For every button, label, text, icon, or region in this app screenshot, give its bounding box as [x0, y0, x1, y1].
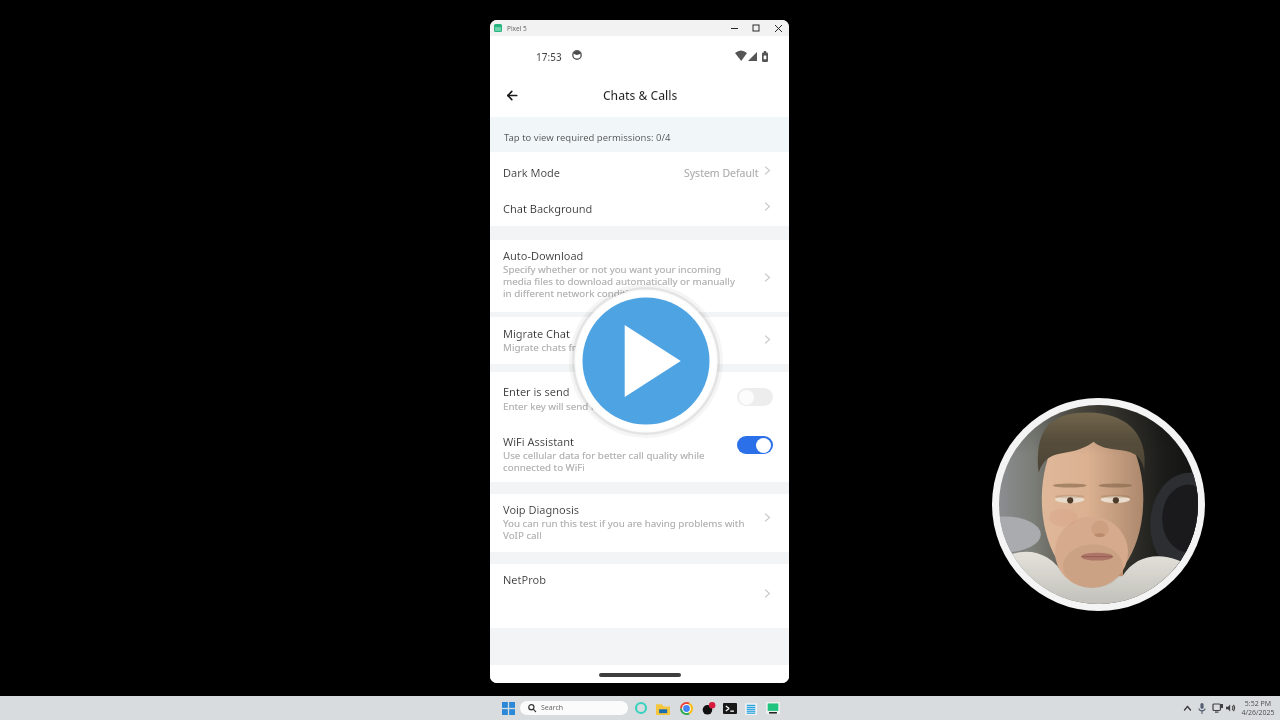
staticText: 5:52 PM 4/26/2025	[1241, 699, 1275, 717]
button[interactable]: Turn on	[737, 388, 773, 406]
button[interactable]: Auto-Download	[490, 244, 789, 313]
button[interactable]: Notes	[740, 696, 762, 720]
button[interactable]: Tap to view required permissions: 0/4	[490, 117, 789, 152]
staticText: Enter key will send message	[503, 400, 633, 413]
staticText: Enter is send	[503, 384, 570, 399]
button[interactable]: Network	[1207, 696, 1229, 720]
button[interactable]: Back	[498, 81, 526, 109]
button[interactable]: Show hidden icons	[1176, 696, 1198, 720]
button[interactable]: Task View	[630, 696, 652, 720]
button[interactable]: 5:52 PM 4/26/2025	[1240, 696, 1276, 720]
staticText: Tap to view required permissions: 0/4	[504, 131, 671, 144]
button[interactable]: Android Emulator	[762, 696, 784, 720]
staticText: Auto-Download	[503, 248, 584, 263]
staticText: System Default	[684, 166, 759, 180]
button[interactable]: Close	[767, 20, 789, 36]
button[interactable]: Dark Mode	[490, 152, 789, 189]
button[interactable]: Music	[697, 696, 719, 720]
staticText: WiFi Assistant	[503, 434, 575, 449]
staticText: Pixel 5	[507, 24, 527, 33]
button[interactable]: Minimize	[723, 20, 745, 36]
button[interactable]: Terminal	[719, 696, 741, 720]
staticText: Migrate chats from other devices	[503, 341, 655, 354]
staticText: Use cellular data for better call qualit…	[503, 449, 745, 474]
staticText: Chat Background	[503, 201, 593, 216]
staticText: NetProb	[503, 572, 546, 587]
button[interactable]: Maximize	[745, 20, 767, 36]
button[interactable]: Search	[520, 701, 628, 715]
button[interactable]: Turn off	[737, 436, 773, 454]
staticText: Specify whether or not you want your inc…	[503, 263, 737, 300]
button[interactable]: Migrate Chat	[490, 318, 789, 365]
button[interactable]: Chat Background	[490, 189, 789, 225]
staticText: Migrate Chat	[503, 326, 571, 341]
button[interactable]: Enter is send	[490, 370, 789, 412]
button[interactable]: Play	[568, 283, 724, 439]
button[interactable]: Start	[496, 696, 520, 720]
staticText: Search	[541, 703, 564, 713]
button[interactable]: Volume	[1219, 696, 1241, 720]
staticText: Dark Mode	[503, 165, 561, 180]
button[interactable]: File Explorer	[652, 696, 674, 720]
staticText: Voip Diagnosis	[503, 502, 580, 517]
staticText: You can run this test if you are having …	[503, 517, 754, 542]
button[interactable]: NetProb	[490, 564, 789, 628]
button[interactable]: WiFi Assistant	[490, 412, 789, 482]
staticText: 17:53	[536, 50, 562, 64]
staticText: Chats & Calls	[603, 87, 678, 103]
button[interactable]: Chrome	[675, 696, 697, 720]
button[interactable]: Microphone	[1191, 696, 1213, 720]
button[interactable]: Voip Diagnosis	[490, 494, 789, 552]
